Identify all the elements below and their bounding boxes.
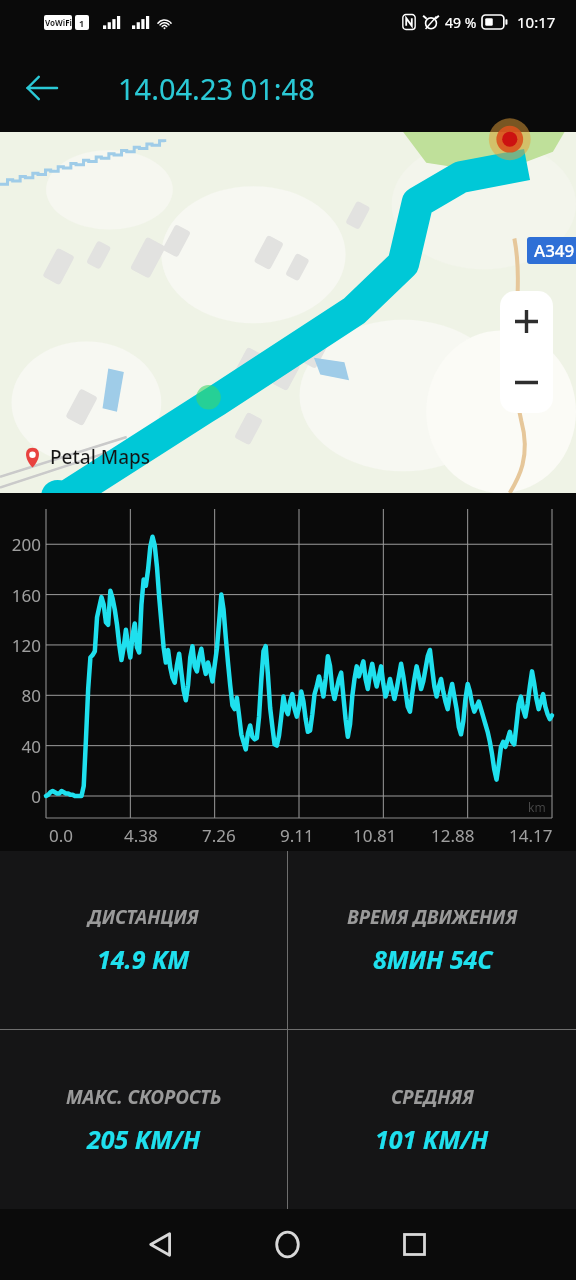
button[interactable]: МАКС. СКОРОСТЬ (0, 1030, 287, 1209)
button[interactable]: ВРЕМЯ ДВИЖЕНИЯ (288, 851, 576, 1029)
button[interactable]: Home (224, 1209, 351, 1280)
staticText: 12.88 (431, 824, 475, 847)
staticText: 14.17 (509, 824, 553, 847)
staticText: ДИСТАНЦИЯ (88, 904, 199, 930)
staticText: ВРЕМЯ ДВИЖЕНИЯ (347, 904, 518, 930)
staticText: 4.38 (124, 824, 158, 847)
button[interactable]: Back (12, 58, 72, 118)
staticText: Petal Maps (50, 444, 151, 470)
staticText: 1 (79, 17, 85, 29)
staticText: 8МИН 54С (373, 942, 493, 976)
button[interactable]: Back (98, 1209, 224, 1280)
button[interactable]: Recent apps (351, 1209, 478, 1280)
staticText: 0 (0, 785, 41, 808)
button[interactable]: ДИСТАНЦИЯ (0, 851, 287, 1029)
button[interactable]: Route map (0, 132, 576, 493)
staticText: 9.11 (280, 824, 314, 847)
staticText: A349 (534, 239, 575, 262)
staticText: km (528, 799, 546, 815)
staticText: 80 (0, 684, 41, 707)
staticText: СРЕДНЯЯ (391, 1084, 474, 1110)
staticText: 160 (0, 584, 41, 607)
staticText: 101 KM/H (375, 1122, 489, 1156)
staticText: VoWiFi (45, 17, 72, 28)
staticText: 205 KM/H (87, 1122, 201, 1156)
staticText: 120 (0, 634, 41, 657)
staticText: 40 (0, 735, 41, 758)
staticText: МАКС. СКОРОСТЬ (66, 1084, 222, 1110)
staticText: 7.26 (202, 824, 236, 847)
staticText: 10:17 (517, 12, 556, 32)
staticText: 10.81 (353, 824, 397, 847)
staticText: 14.04.23 01:48 (118, 69, 315, 108)
button[interactable]: Zoom in (500, 291, 553, 352)
staticText: 200 (0, 533, 41, 556)
button[interactable]: СРЕДНЯЯ (288, 1030, 576, 1209)
staticText: 49 % (445, 13, 477, 32)
staticText: 0.0 (49, 824, 74, 847)
staticText: 14.9 KM (97, 942, 190, 976)
button[interactable]: Zoom out (500, 352, 553, 413)
